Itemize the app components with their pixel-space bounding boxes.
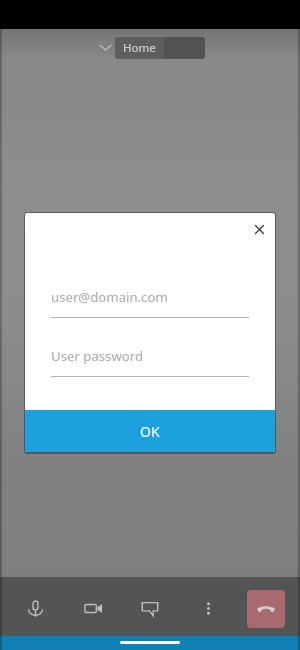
button[interactable]: Home — [115, 37, 164, 59]
button[interactable]: Mute microphone — [19, 592, 51, 624]
staticText: User password — [51, 347, 144, 365]
staticText: OK — [140, 422, 160, 441]
button[interactable]: Expand — [96, 38, 115, 57]
staticText: user@domain.com — [51, 288, 168, 306]
button[interactable]: More options — [192, 592, 224, 624]
button[interactable]: OK — [25, 410, 275, 452]
button[interactable]: Chat — [134, 592, 166, 624]
button[interactable]: Turn off camera — [77, 592, 109, 624]
staticText: Home — [123, 40, 156, 56]
button[interactable]: Close — [247, 217, 271, 241]
button[interactable]: user@domain.com — [51, 288, 249, 318]
button[interactable]: User password — [51, 347, 249, 377]
button[interactable]: End call — [247, 590, 285, 628]
